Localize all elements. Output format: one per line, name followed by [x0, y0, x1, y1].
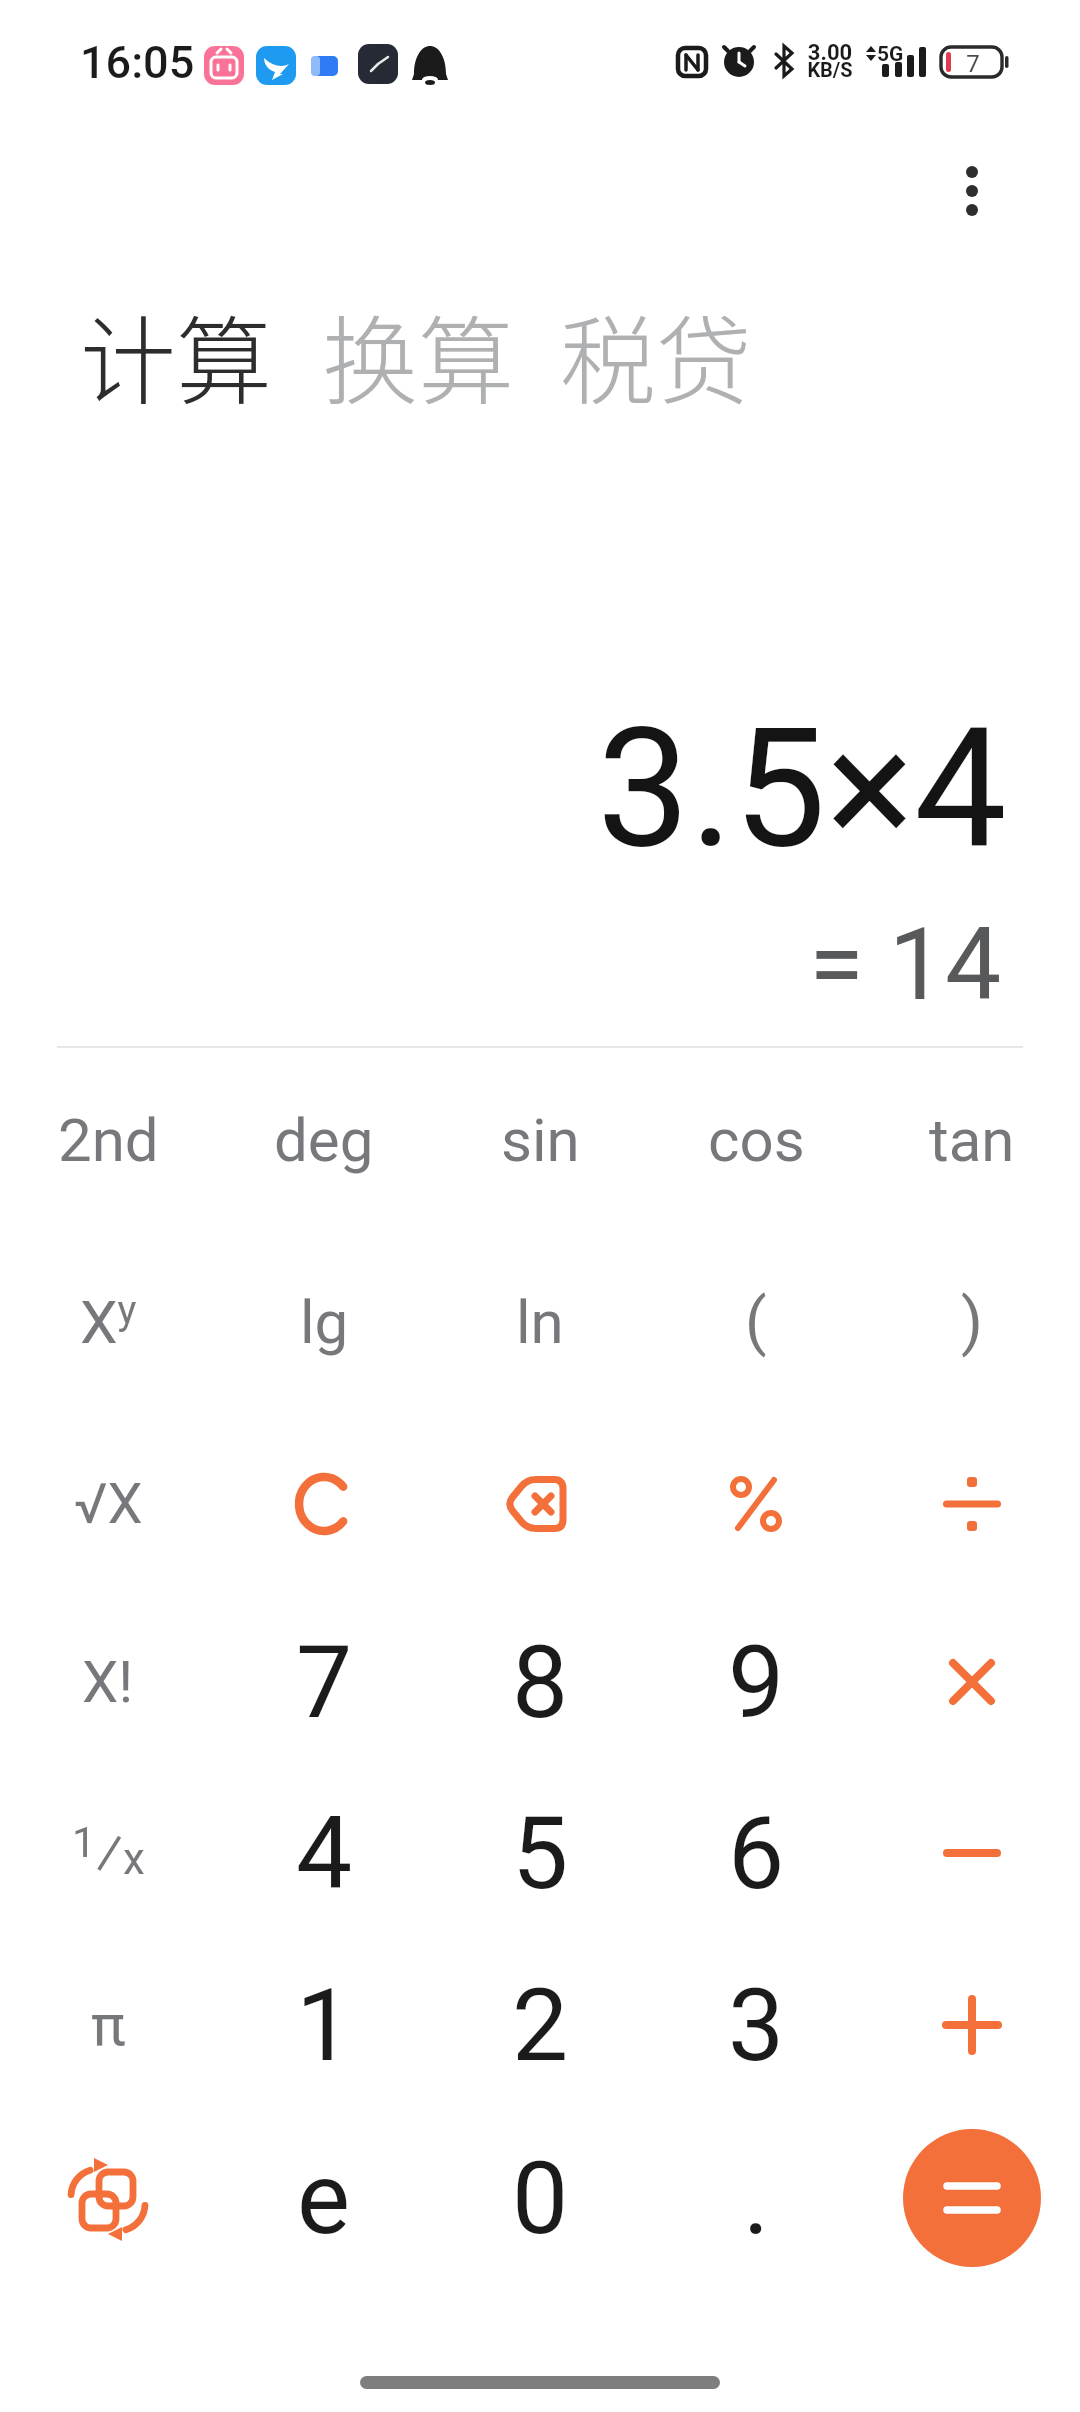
button[interactable]: 8	[432, 1594, 648, 1770]
button[interactable]: )	[864, 1234, 1080, 1410]
staticText: tan	[929, 1105, 1015, 1175]
staticText: = 14	[809, 906, 1002, 1018]
staticText: X!	[82, 1648, 134, 1716]
staticText: 8	[512, 1624, 569, 1741]
button[interactable]: tan	[864, 1052, 1080, 1228]
button[interactable]: 7	[216, 1594, 432, 1770]
button[interactable]: 9	[648, 1594, 864, 1770]
button[interactable]: 1	[216, 1937, 432, 2113]
staticText: 3	[728, 1967, 785, 2084]
button[interactable]	[864, 1416, 1080, 1592]
button[interactable]: (	[648, 1234, 864, 1410]
staticText: 1⁄x	[72, 1818, 145, 1889]
button[interactable]: X!	[0, 1594, 216, 1770]
button[interactable]	[432, 1416, 648, 1592]
staticText: 3.5×4	[597, 692, 1007, 885]
button[interactable]: √X	[0, 1416, 216, 1592]
staticText: √X	[74, 1471, 143, 1537]
button[interactable]: Xy	[0, 1234, 216, 1410]
staticText: 0	[512, 2140, 569, 2257]
button[interactable]: π	[0, 1937, 216, 2113]
button[interactable]: sin	[432, 1052, 648, 1228]
staticText: e	[297, 2140, 351, 2257]
staticText: 5	[512, 1795, 569, 1912]
button[interactable]: 计算	[80, 285, 272, 424]
staticText: Xy	[80, 1287, 137, 1357]
staticText: 计算	[80, 285, 272, 424]
staticText: 9	[728, 1624, 785, 1741]
staticText: (	[745, 1285, 767, 1359]
staticText: 6	[728, 1795, 785, 1912]
button[interactable]	[0, 2110, 216, 2286]
staticText: sin	[501, 1105, 580, 1175]
button[interactable]	[864, 1937, 1080, 2113]
staticText: 7	[958, 50, 988, 78]
button[interactable]: 2	[432, 1937, 648, 2113]
button[interactable]: 6	[648, 1765, 864, 1941]
staticText: 税贷	[560, 285, 752, 424]
button[interactable]: e	[216, 2110, 432, 2286]
button[interactable]	[216, 1416, 432, 1592]
staticText: 换算	[322, 285, 514, 424]
staticText: 1	[296, 1967, 353, 2084]
button[interactable]: cos	[648, 1052, 864, 1228]
staticText: ln	[516, 1287, 564, 1357]
button[interactable]	[864, 1594, 1080, 1770]
button[interactable]: deg	[216, 1052, 432, 1228]
button[interactable]	[864, 1765, 1080, 1941]
staticText: deg	[274, 1105, 374, 1175]
button[interactable]	[903, 2129, 1041, 2267]
button[interactable]: 4	[216, 1765, 432, 1941]
button[interactable]: lg	[216, 1234, 432, 1410]
button[interactable]: 2nd	[0, 1052, 216, 1228]
button[interactable]: 税贷	[560, 285, 752, 424]
staticText: 16:05	[80, 36, 200, 89]
staticText: 5G	[877, 42, 907, 67]
staticText: π	[91, 1991, 126, 2059]
button[interactable]: .	[648, 2110, 864, 2286]
staticText: lg	[300, 1287, 349, 1357]
button[interactable]: 1⁄x	[0, 1765, 216, 1941]
staticText: 7	[296, 1624, 353, 1741]
button[interactable]: 换算	[322, 285, 514, 424]
staticText: 3.00	[800, 40, 860, 66]
staticText: )	[961, 1285, 983, 1359]
staticText: 4	[296, 1795, 353, 1912]
staticText: 2nd	[58, 1105, 159, 1175]
button[interactable]	[648, 1416, 864, 1592]
button[interactable]: ln	[432, 1234, 648, 1410]
staticText: .	[743, 2140, 770, 2257]
staticText: KB/S	[800, 58, 860, 81]
button[interactable]: 0	[432, 2110, 648, 2286]
staticText: 2	[512, 1967, 569, 2084]
button[interactable]	[864, 2110, 1080, 2286]
button[interactable]: 5	[432, 1765, 648, 1941]
button[interactable]	[942, 142, 1002, 242]
button[interactable]: 3	[648, 1937, 864, 2113]
staticText: cos	[708, 1105, 805, 1175]
